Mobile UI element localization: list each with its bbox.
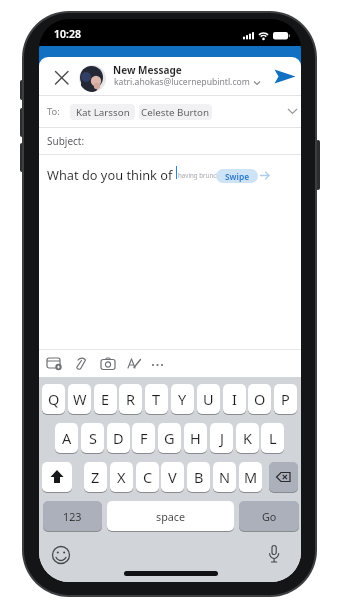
- button[interactable]: T: [145, 384, 168, 414]
- button[interactable]: E: [94, 384, 117, 414]
- staticText: What do you think of: [47, 166, 173, 183]
- staticText: M: [244, 467, 258, 487]
- button[interactable]: Celeste Burton: [139, 104, 212, 120]
- staticText: T: [152, 389, 161, 409]
- button[interactable]: C: [136, 462, 159, 492]
- button[interactable]: K: [236, 423, 259, 453]
- staticText: To:: [47, 105, 60, 118]
- staticText: A: [62, 428, 72, 448]
- button[interactable]: katri.ahokas@lucernepubintl.com: [114, 76, 250, 88]
- button[interactable]: R: [119, 384, 142, 414]
- staticText: B: [194, 467, 204, 487]
- button[interactable]: I: [223, 384, 246, 414]
- staticText: having brunch: [178, 171, 221, 179]
- button[interactable]: V: [161, 462, 184, 492]
- staticText: katri.ahokas@lucernepubintl.com: [114, 76, 250, 88]
- staticText: F: [140, 428, 148, 448]
- staticText: E: [101, 389, 110, 409]
- staticText: W: [73, 389, 87, 409]
- staticText: D: [113, 428, 124, 448]
- button[interactable]: Kat Larsson: [70, 104, 135, 120]
- staticText: Y: [178, 389, 187, 409]
- button[interactable]: Y: [171, 384, 194, 414]
- button[interactable]: A: [55, 423, 78, 453]
- button[interactable]: O: [248, 384, 271, 414]
- button[interactable]: [273, 68, 297, 85]
- staticText: 123: [63, 509, 82, 524]
- staticText: Z: [91, 467, 100, 487]
- button[interactable]: D: [107, 423, 130, 453]
- button[interactable]: L: [261, 423, 284, 453]
- staticText: Subject:: [47, 134, 85, 148]
- button[interactable]: J: [210, 423, 233, 453]
- staticText: V: [168, 467, 177, 487]
- button[interactable]: Q: [42, 384, 65, 414]
- button[interactable]: S: [81, 423, 104, 453]
- button[interactable]: Swipe: [216, 169, 258, 183]
- staticText: K: [243, 428, 252, 448]
- staticText: L: [269, 428, 277, 448]
- button[interactable]: Z: [84, 462, 107, 492]
- staticText: R: [126, 389, 136, 409]
- staticText: P: [281, 389, 290, 409]
- button[interactable]: space: [107, 501, 234, 531]
- button[interactable]: [42, 462, 72, 492]
- staticText: Go: [262, 509, 277, 524]
- staticText: N: [219, 467, 231, 487]
- staticText: Kat Larsson: [76, 106, 130, 119]
- staticText: Celeste Burton: [141, 106, 210, 119]
- button[interactable]: Go: [239, 501, 299, 531]
- button[interactable]: N: [213, 462, 236, 492]
- staticText: Swipe: [225, 171, 250, 182]
- button[interactable]: [79, 65, 106, 92]
- staticText: J: [220, 428, 224, 448]
- button[interactable]: F: [132, 423, 155, 453]
- staticText: space: [156, 509, 186, 524]
- button[interactable]: M: [239, 462, 262, 492]
- staticText: X: [117, 467, 126, 487]
- button[interactable]: 123: [43, 501, 102, 531]
- staticText: G: [164, 428, 175, 448]
- staticText: Q: [48, 389, 60, 409]
- button[interactable]: B: [187, 462, 210, 492]
- button[interactable]: X: [110, 462, 133, 492]
- staticText: S: [89, 428, 97, 448]
- staticText: New Message: [113, 63, 182, 77]
- button[interactable]: [53, 69, 71, 87]
- staticText: U: [203, 389, 214, 409]
- staticText: C: [143, 467, 153, 487]
- button[interactable]: G: [158, 423, 181, 453]
- button[interactable]: U: [197, 384, 220, 414]
- button[interactable]: H: [184, 423, 207, 453]
- button[interactable]: [269, 462, 298, 492]
- staticText: I: [232, 389, 237, 409]
- staticText: 10:28: [54, 27, 81, 41]
- staticText: H: [190, 428, 201, 448]
- staticText: O: [254, 389, 266, 409]
- button[interactable]: P: [274, 384, 297, 414]
- button[interactable]: W: [68, 384, 91, 414]
